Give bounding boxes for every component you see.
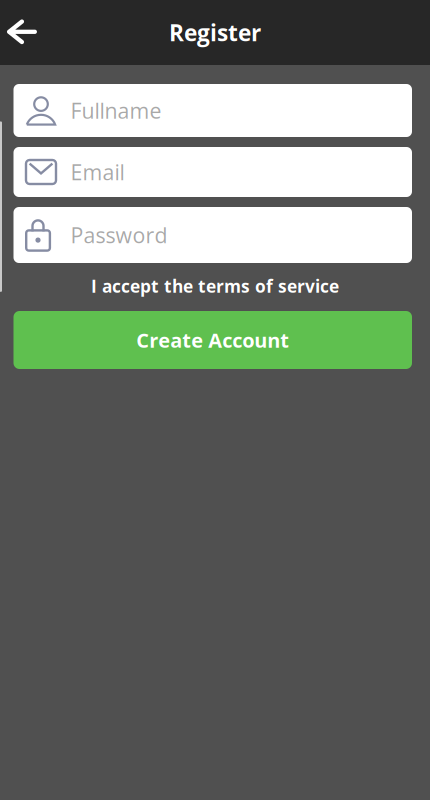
button[interactable]: Email: [13, 147, 412, 197]
button[interactable]: Fullname: [13, 84, 412, 137]
button[interactable]: Password: [13, 207, 412, 263]
staticText: Email: [70, 157, 124, 187]
button[interactable]: Back: [0, 0, 48, 65]
button[interactable]: Create Account: [13, 311, 412, 369]
staticText: Register: [169, 17, 261, 48]
staticText: Create Account: [136, 326, 289, 354]
staticText: Fullname: [70, 96, 161, 125]
staticText: I accept the terms of service: [91, 274, 339, 298]
staticText: Password: [70, 220, 167, 250]
